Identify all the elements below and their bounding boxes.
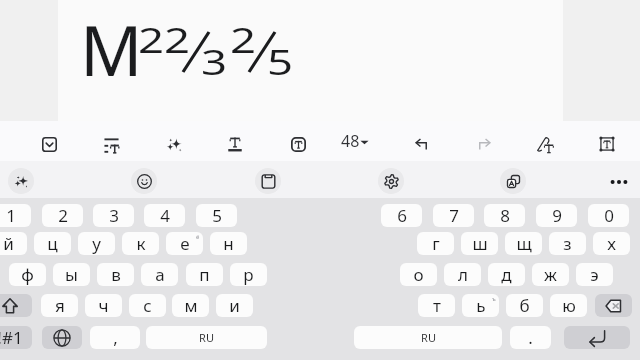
button[interactable]: 2 (42, 204, 83, 227)
staticText: 2 (230, 16, 257, 64)
button[interactable]: 0 (588, 204, 629, 227)
staticText: т (433, 294, 441, 317)
button[interactable]: Redo (466, 127, 500, 161)
staticText: ы (65, 263, 78, 286)
staticText: б (519, 294, 530, 317)
button[interactable]: я (41, 294, 78, 317)
staticText: 7 (449, 204, 459, 227)
button[interactable]: RU (354, 326, 502, 349)
staticText: е (180, 232, 190, 255)
button[interactable]: 6 (381, 204, 422, 227)
button[interactable]: 8 (484, 204, 525, 227)
button[interactable]: к (122, 232, 159, 255)
button[interactable]: 3 (93, 204, 134, 227)
staticText: 8 (500, 204, 510, 227)
button[interactable]: ь (462, 294, 499, 317)
button[interactable]: Enter (564, 326, 630, 349)
button[interactable]: д (488, 263, 525, 286)
staticText: 5 (267, 38, 294, 86)
button[interactable]: Underline (218, 127, 252, 161)
button[interactable]: 48 (341, 129, 377, 153)
button[interactable]: ц (34, 232, 71, 255)
button[interactable]: т (418, 294, 455, 317)
button[interactable]: о (400, 263, 437, 286)
staticText: й (3, 232, 14, 255)
button[interactable]: Clipboard (255, 168, 281, 194)
staticText: г (432, 232, 440, 255)
staticText: M (80, 2, 143, 96)
button[interactable]: ш (461, 232, 498, 255)
button[interactable]: ы (53, 263, 90, 286)
button[interactable]: 4 (144, 204, 185, 227)
button[interactable]: Shift (0, 294, 32, 317)
button[interactable]: ж (532, 263, 569, 286)
staticText: а (155, 263, 165, 286)
button[interactable]: с (129, 294, 166, 317)
staticText: 9 (552, 204, 562, 227)
staticText: RU (199, 330, 214, 345)
button[interactable]: 1 (0, 204, 31, 227)
button[interactable]: а (141, 263, 178, 286)
staticText: м (184, 294, 198, 317)
button[interactable]: г (417, 232, 454, 255)
button[interactable]: ч (85, 294, 122, 317)
button[interactable]: AI assist (8, 168, 34, 194)
button[interactable]: 7 (433, 204, 474, 227)
button[interactable]: б (506, 294, 543, 317)
staticText: 5 (212, 204, 222, 227)
button[interactable]: н (210, 232, 247, 255)
button[interactable]: Text frame (590, 127, 624, 161)
button[interactable]: More options (606, 169, 632, 195)
button[interactable]: !#1 (0, 326, 32, 349)
staticText: !#1 (0, 326, 23, 349)
staticText: з (563, 232, 572, 255)
button[interactable]: , (90, 326, 140, 349)
button[interactable]: Text box (281, 127, 315, 161)
button[interactable]: Backspace (595, 294, 632, 317)
staticText: ъ (492, 295, 496, 303)
button[interactable]: е (166, 232, 203, 255)
staticText: . (528, 326, 533, 349)
button[interactable]: Settings (378, 168, 404, 194)
button[interactable]: Translate (500, 168, 526, 194)
button[interactable]: Checklist (32, 127, 66, 161)
staticText: ч (98, 294, 109, 317)
staticText: ш (472, 232, 488, 255)
button[interactable]: п (186, 263, 223, 286)
button[interactable]: 5 (196, 204, 237, 227)
button[interactable]: Emoji (131, 168, 157, 194)
staticText: щ (516, 232, 532, 255)
staticText: 2 (58, 204, 68, 227)
button[interactable]: Undo (405, 127, 439, 161)
button[interactable]: р (230, 263, 267, 286)
staticText: ф (21, 263, 34, 286)
button[interactable]: х (593, 232, 630, 255)
button[interactable]: щ (505, 232, 542, 255)
staticText: 0 (604, 204, 614, 227)
button[interactable]: Change keyboard (42, 326, 82, 349)
button[interactable]: в (97, 263, 134, 286)
button[interactable]: ф (9, 263, 46, 286)
staticText: , (113, 326, 118, 349)
button[interactable]: ю (550, 294, 587, 317)
button[interactable]: э (576, 263, 613, 286)
staticText: о (413, 263, 424, 286)
button[interactable]: м (172, 294, 209, 317)
button[interactable]: . (510, 326, 551, 349)
staticText: 48 (341, 130, 360, 152)
button[interactable]: AI assist (157, 127, 191, 161)
button[interactable]: з (549, 232, 586, 255)
button[interactable]: у (78, 232, 115, 255)
staticText: 3 (201, 38, 228, 86)
button[interactable]: й (0, 232, 27, 255)
button[interactable]: RU (146, 326, 267, 349)
button[interactable]: и (216, 294, 253, 317)
button[interactable]: Handwriting to text (528, 127, 562, 161)
button[interactable]: л (444, 263, 481, 286)
button[interactable]: 9 (536, 204, 577, 227)
button[interactable]: Paragraph style (94, 128, 128, 162)
staticText: ё (196, 233, 200, 241)
staticText: н (223, 232, 234, 255)
staticText: 2 (138, 16, 165, 64)
staticText: р (243, 263, 254, 286)
